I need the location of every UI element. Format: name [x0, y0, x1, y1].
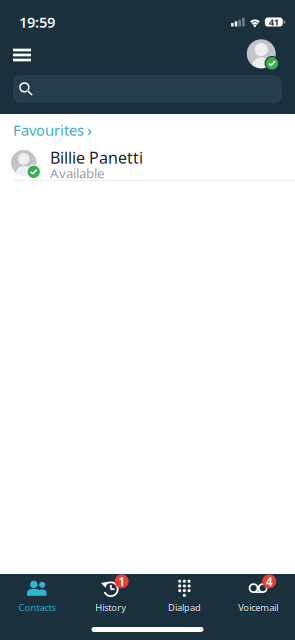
button[interactable]: Dialpad [147, 575, 221, 617]
button[interactable]: Billie Panetti [0, 146, 295, 181]
staticText: Available [50, 164, 105, 182]
staticText: Dialpad [168, 601, 201, 614]
button[interactable]: 4 [221, 575, 295, 617]
button[interactable]: Search [13, 75, 282, 103]
staticText: 41 [269, 16, 279, 28]
staticText: Voicemail [238, 601, 278, 614]
staticText: 4 [266, 573, 273, 589]
button[interactable]: Contacts [0, 575, 74, 617]
button[interactable]: Profile [236, 38, 295, 72]
staticText: 1 [118, 573, 125, 589]
staticText: › [87, 119, 92, 141]
staticText: Favourites [13, 120, 84, 140]
staticText: 19:59 [19, 12, 55, 32]
button[interactable]: Favourites [0, 114, 295, 146]
staticText: Contacts [18, 601, 55, 614]
staticText: Billie Panetti [50, 147, 143, 168]
button[interactable]: Menu [0, 38, 47, 72]
staticText: History [95, 601, 126, 614]
button[interactable]: 1 [74, 575, 148, 617]
